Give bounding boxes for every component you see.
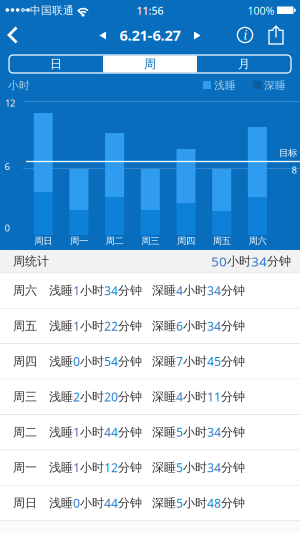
staticText: 分钟 [118, 460, 142, 475]
staticText: 100% [247, 3, 274, 18]
staticText: 8 [291, 164, 296, 176]
staticText: 50 [211, 252, 227, 270]
button[interactable]: i [236, 26, 254, 44]
staticText: 深睡 [264, 79, 286, 92]
staticText: 44 [104, 424, 118, 440]
staticText: 周二 [13, 425, 37, 439]
staticText: 34 [207, 318, 221, 334]
staticText: 1 [73, 283, 80, 298]
staticText: 深睡 [152, 283, 176, 298]
staticText: 深睡 [152, 389, 176, 404]
button[interactable]: 月 [197, 55, 291, 73]
staticText: 深睡 [152, 425, 176, 439]
staticText: 34 [104, 283, 118, 298]
staticText: 目标 [279, 147, 297, 159]
staticText: 小时 [183, 389, 207, 404]
staticText: 0 [4, 222, 9, 234]
staticText: 周二 [106, 235, 124, 247]
staticText: 周五 [213, 235, 231, 247]
staticText: 1 [73, 318, 80, 334]
staticText: 34 [207, 460, 221, 475]
staticText: 5 [176, 460, 183, 475]
button[interactable] [188, 27, 206, 43]
button[interactable] [94, 27, 112, 43]
staticText: 浅睡 [214, 79, 236, 92]
staticText: 6.21-6.27 [119, 25, 180, 45]
staticText: 分钟 [221, 389, 245, 404]
staticText: 0 [73, 353, 80, 369]
staticText: 小时 [80, 389, 104, 404]
staticText: 0 [73, 495, 80, 511]
staticText: 小时 [80, 354, 104, 369]
staticText: 12 [104, 460, 118, 475]
staticText: 4 [176, 283, 183, 298]
staticText: 分钟 [221, 319, 245, 333]
staticText: 中国联通 [30, 4, 74, 17]
staticText: 1 [73, 424, 80, 440]
staticText: 6 [176, 318, 183, 334]
staticText: 5 [176, 495, 183, 511]
staticText: 小时 [80, 425, 104, 439]
button[interactable] [268, 25, 284, 44]
staticText: 分钟 [118, 425, 142, 439]
staticText: 周日 [34, 235, 52, 247]
staticText: 分钟 [267, 254, 291, 269]
staticText: 周日 [13, 496, 37, 510]
staticText: 小时 [183, 460, 207, 475]
staticText: 周五 [13, 319, 37, 333]
staticText: 周 [144, 57, 156, 71]
staticText: 浅睡 [49, 389, 73, 404]
staticText: 小时 [183, 496, 207, 510]
staticText: 7 [176, 353, 183, 369]
staticText: 小时 [183, 354, 207, 369]
staticText: 小时 [183, 425, 207, 439]
staticText: 浅睡 [49, 319, 73, 333]
staticText: 周四 [13, 354, 37, 369]
staticText: 小时 [183, 319, 207, 333]
staticText: 浅睡 [49, 460, 73, 475]
staticText: 小时 [8, 79, 30, 92]
staticText: 48 [207, 495, 221, 511]
staticText: 11:56 [136, 3, 163, 18]
staticText: 分钟 [221, 460, 245, 475]
staticText: 11 [207, 389, 221, 405]
staticText: 周六 [248, 235, 266, 247]
staticText: 小时 [80, 460, 104, 475]
staticText: 分钟 [221, 496, 245, 510]
button[interactable] [7, 26, 19, 44]
staticText: 周三 [13, 389, 37, 404]
staticText: 34 [207, 424, 221, 440]
staticText: 5 [176, 424, 183, 440]
staticText: 深睡 [152, 496, 176, 510]
staticText: 34 [207, 283, 221, 298]
staticText: 小时 [227, 254, 251, 269]
staticText: 浅睡 [49, 425, 73, 439]
staticText: 周四 [177, 235, 195, 247]
staticText: 分钟 [118, 319, 142, 333]
staticText: 分钟 [221, 283, 245, 298]
staticText: 周一 [13, 460, 37, 475]
staticText: 分钟 [118, 389, 142, 404]
button[interactable]: 周 [103, 55, 197, 73]
staticText: 分钟 [118, 354, 142, 369]
staticText: 小时 [80, 496, 104, 510]
staticText: 小时 [80, 283, 104, 298]
staticText: 月 [238, 57, 250, 71]
staticText: 小时 [80, 319, 104, 333]
staticText: 浅睡 [49, 354, 73, 369]
staticText: 深睡 [152, 319, 176, 333]
staticText: 44 [104, 495, 118, 511]
staticText: 4 [176, 389, 183, 405]
staticText: 分钟 [221, 354, 245, 369]
staticText: 6 [4, 160, 9, 173]
staticText: 2 [73, 389, 80, 405]
staticText: 深睡 [152, 354, 176, 369]
staticText: 日 [50, 57, 62, 71]
staticText: 12 [5, 97, 15, 109]
staticText: 20 [104, 389, 118, 405]
staticText: 54 [104, 353, 118, 369]
staticText: i [243, 27, 247, 43]
staticText: 周一 [70, 235, 88, 247]
staticText: 分钟 [118, 283, 142, 298]
button[interactable]: 日 [9, 55, 103, 73]
